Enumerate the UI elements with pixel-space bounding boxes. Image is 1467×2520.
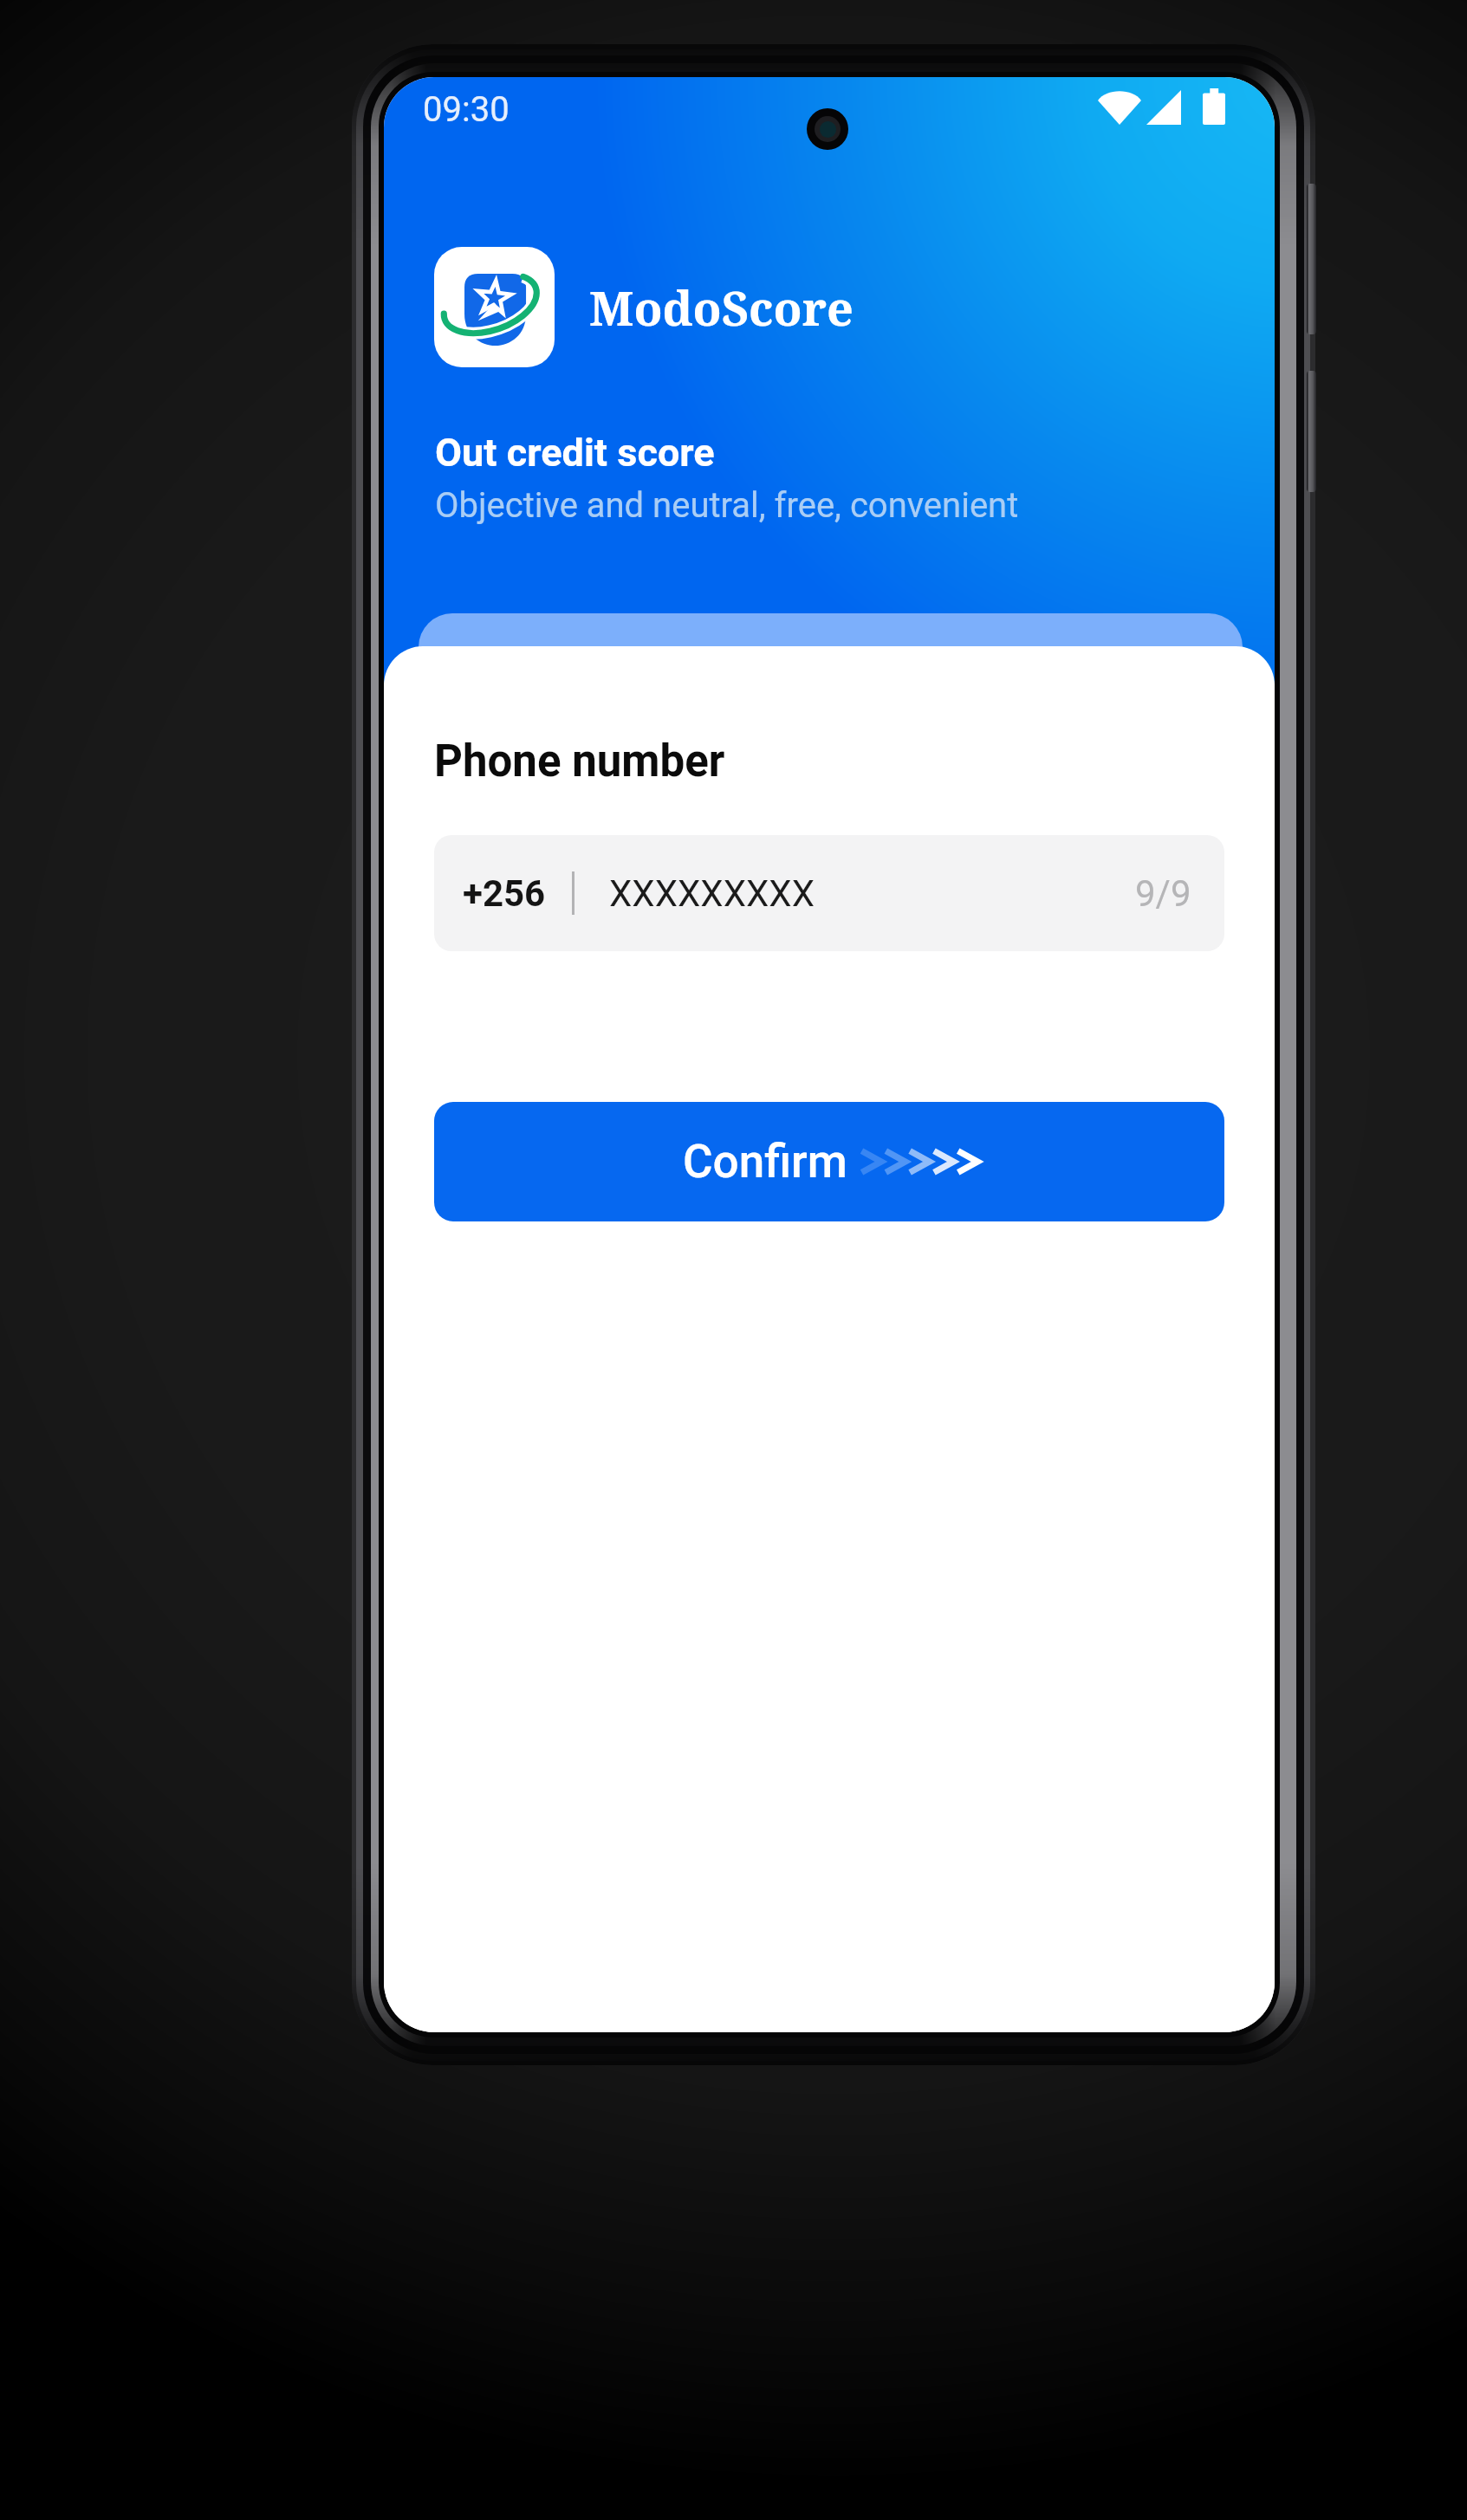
staticText: Out credit score xyxy=(435,430,715,476)
button[interactable]: +256 xyxy=(434,835,1224,951)
other: Cellular signal xyxy=(1146,90,1181,125)
staticText: 09:30 xyxy=(423,89,510,130)
staticText: XXXXXXXXX xyxy=(609,872,815,915)
staticText: Objective and neutral, free, convenient xyxy=(435,485,1019,526)
staticText: +256 xyxy=(463,872,546,915)
other: Wi-Fi signal xyxy=(1097,90,1142,125)
staticText: ModoScore xyxy=(589,275,854,340)
other: Battery xyxy=(1203,88,1225,125)
button[interactable]: Confirm xyxy=(434,1102,1224,1221)
button[interactable]: ModoScore xyxy=(434,247,854,367)
staticText: 9/9 xyxy=(1135,872,1191,915)
staticText: Phone number xyxy=(434,735,725,787)
staticText: Confirm xyxy=(683,1135,847,1189)
